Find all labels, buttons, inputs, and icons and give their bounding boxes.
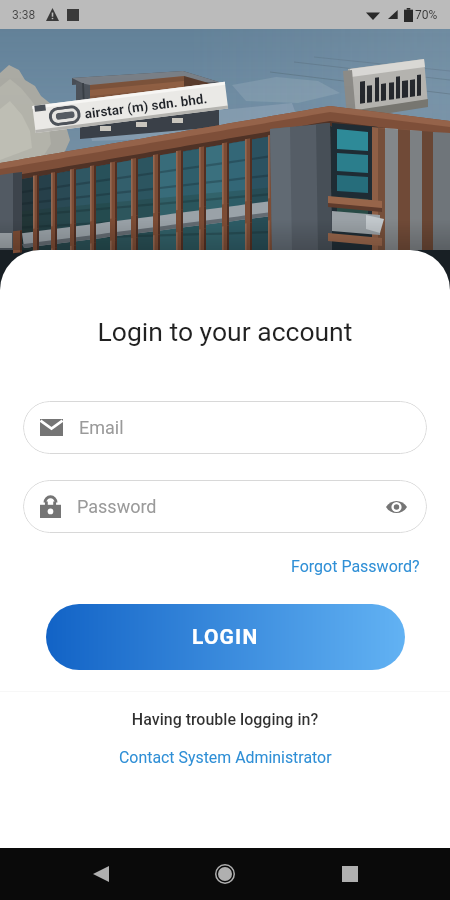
staticText: Login to your account [0,316,450,347]
staticText: Email [79,417,124,438]
button[interactable]: Password [23,480,427,533]
staticText: Forgot Password? [291,557,420,576]
button[interactable]: Home [201,850,249,898]
staticText: 70% [415,8,438,22]
button[interactable]: Back [77,850,125,898]
button[interactable]: LOGIN [46,604,405,670]
button[interactable]: Forgot Password? [287,553,424,580]
button[interactable]: Contact System Administrator [113,746,338,769]
staticText: 3:38 [12,8,36,22]
button[interactable]: Email [23,401,427,454]
staticText: Contact System Administrator [119,748,332,767]
staticText: Password [77,496,157,517]
button[interactable]: Recents [326,850,374,898]
staticText: LOGIN [192,625,259,650]
staticText: airstar (m) sdn. bhd. [84,90,209,121]
staticText: Having trouble logging in? [0,710,450,729]
button[interactable]: Show password [381,492,411,522]
